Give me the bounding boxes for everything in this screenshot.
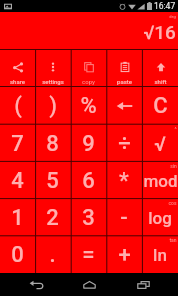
- button[interactable]: Copy: [70, 50, 106, 86]
- staticText: 16:47: [154, 1, 176, 11]
- staticText: ): [49, 93, 57, 119]
- staticText: sin: [170, 163, 177, 169]
- staticText: 0: [11, 242, 24, 268]
- staticText: 5: [46, 168, 59, 194]
- staticText: cos: [168, 200, 177, 206]
- button[interactable]: 3: [70, 199, 106, 236]
- button[interactable]: (: [0, 87, 35, 125]
- button[interactable]: ln: [142, 236, 178, 273]
- staticText: 6: [82, 168, 95, 194]
- button[interactable]: mod: [142, 162, 178, 199]
- button[interactable]: 1: [0, 199, 35, 236]
- staticText: ÷: [118, 131, 131, 157]
- button[interactable]: 2: [35, 199, 70, 236]
- button[interactable]: 9: [70, 125, 106, 162]
- staticText: =: [82, 242, 95, 268]
- button[interactable]: 4: [0, 162, 35, 199]
- staticText: tan: [169, 237, 177, 243]
- button[interactable]: C: [142, 87, 178, 125]
- staticText: 7: [11, 131, 24, 157]
- button[interactable]: 6: [70, 162, 106, 199]
- staticText: .: [49, 242, 56, 268]
- button[interactable]: 5: [35, 162, 70, 199]
- staticText: 2: [46, 205, 59, 231]
- button[interactable]: Back: [18, 273, 54, 296]
- staticText: settings: [42, 78, 64, 85]
- staticText: mod: [143, 171, 178, 191]
- staticText: ^: [174, 126, 177, 132]
- button[interactable]: Shift: [142, 50, 178, 86]
- staticText: log: [148, 208, 172, 228]
- button[interactable]: log: [142, 199, 178, 236]
- staticText: √16: [143, 21, 176, 43]
- button[interactable]: Share: [0, 50, 35, 86]
- button[interactable]: .: [35, 236, 70, 273]
- button[interactable]: +: [106, 236, 142, 273]
- staticText: share: [10, 78, 25, 85]
- staticText: 3: [82, 205, 95, 231]
- staticText: +: [118, 242, 131, 268]
- staticText: 9: [82, 131, 95, 157]
- staticText: √: [154, 132, 166, 155]
- button[interactable]: Home: [71, 273, 107, 296]
- staticText: *: [119, 168, 129, 194]
- button[interactable]: Settings: [35, 50, 70, 86]
- button[interactable]: Backspace: [106, 87, 142, 125]
- button[interactable]: ): [35, 87, 70, 125]
- staticText: (: [14, 93, 22, 119]
- button[interactable]: %: [70, 87, 106, 125]
- staticText: -: [120, 205, 128, 231]
- staticText: shift: [154, 78, 167, 85]
- button[interactable]: 8: [35, 125, 70, 162]
- button[interactable]: √: [142, 125, 178, 162]
- staticText: %: [80, 93, 97, 119]
- staticText: deg: [169, 14, 176, 19]
- staticText: C: [153, 93, 168, 119]
- button[interactable]: Recents: [125, 273, 161, 296]
- button[interactable]: Paste: [106, 50, 142, 86]
- button[interactable]: *: [106, 162, 142, 199]
- staticText: paste: [117, 78, 132, 85]
- staticText: ln: [153, 245, 167, 265]
- button[interactable]: -: [106, 199, 142, 236]
- staticText: copy: [82, 78, 95, 85]
- button[interactable]: ÷: [106, 125, 142, 162]
- staticText: 1: [11, 205, 24, 231]
- button[interactable]: =: [70, 236, 106, 273]
- staticText: 8: [46, 131, 59, 157]
- staticText: 4: [11, 168, 24, 194]
- button[interactable]: 7: [0, 125, 35, 162]
- button[interactable]: 0: [0, 236, 35, 273]
